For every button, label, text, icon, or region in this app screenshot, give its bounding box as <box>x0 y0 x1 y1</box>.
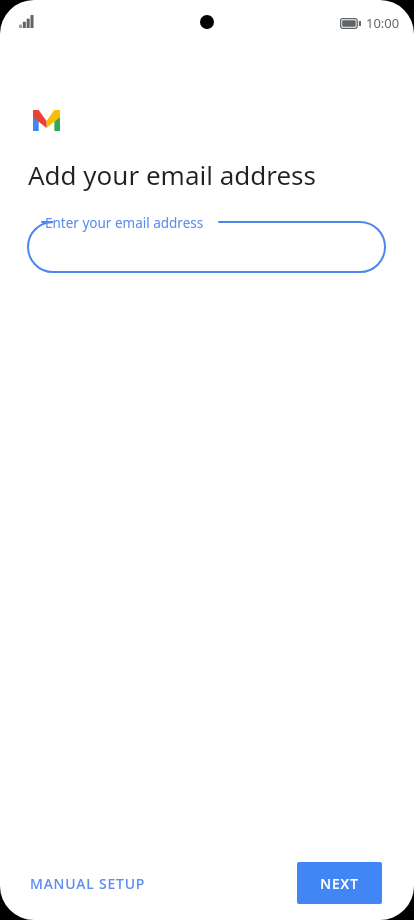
staticText: MANUAL SETUP <box>30 874 146 893</box>
staticText: Enter your email address <box>45 214 204 232</box>
button[interactable]: MANUAL SETUP <box>18 866 158 901</box>
staticText: 10:00 <box>366 14 400 32</box>
other: Gmail <box>33 110 60 131</box>
button[interactable]: NEXT <box>297 862 382 904</box>
staticText: NEXT <box>320 874 359 893</box>
staticText: Add your email address <box>28 157 317 192</box>
button[interactable]: Enter your email address <box>27 210 386 282</box>
